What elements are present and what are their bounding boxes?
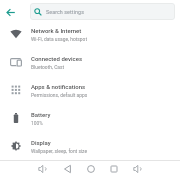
staticText: Wallpaper, sleep, font size [31,148,88,154]
button[interactable] [83,161,99,176]
button[interactable] [34,161,50,176]
button[interactable]: Search settings [30,3,175,20]
button[interactable] [106,161,122,176]
staticText: Network & Internet [31,27,82,34]
staticText: Bluetooth, Cast [31,64,65,70]
staticText: Display [31,139,51,146]
staticText: 100% [31,120,43,126]
button[interactable]: Battery [0,104,180,132]
staticText: Connected devices [31,55,83,62]
button[interactable]: Connected devices [0,48,180,76]
staticText: Apps & notifications [31,83,86,90]
button[interactable] [129,161,145,176]
button[interactable]: Display [0,132,180,160]
staticText: Battery [31,111,51,118]
button[interactable] [60,161,76,176]
button[interactable]: Apps & notifications [0,76,180,104]
button[interactable] [3,4,18,19]
button[interactable]: Network & Internet [0,20,180,48]
staticText: Wi-Fi, data usage, hotspot [31,36,87,42]
staticText: Permissions, default apps [31,92,88,98]
staticText: Search settings [46,9,85,15]
